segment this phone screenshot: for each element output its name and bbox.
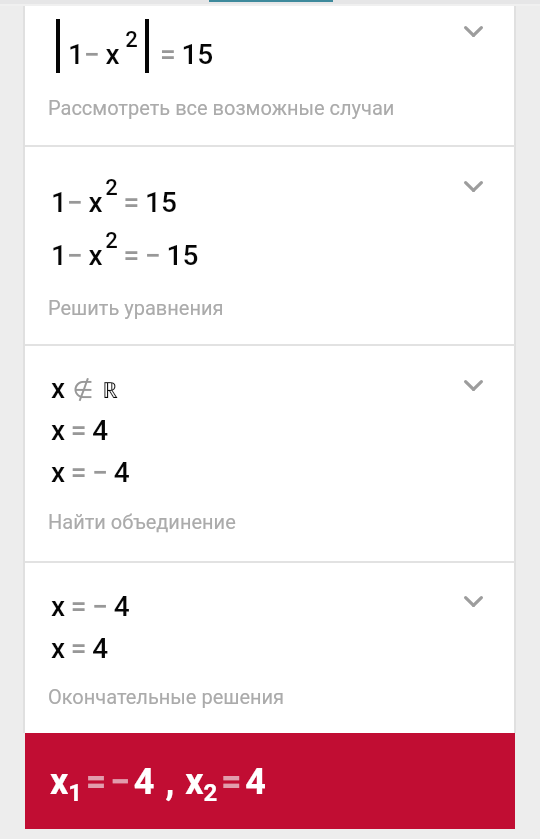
button[interactable]: Expand step xyxy=(451,164,495,208)
button[interactable]: Expand step xyxy=(451,579,495,623)
staticText: x = 4 xyxy=(51,632,109,665)
staticText: 1− x 2 = − 15 xyxy=(51,228,199,272)
button[interactable]: x1 = − 4 , x2 = 4 xyxy=(25,733,515,829)
staticText: 1− x 2 xyxy=(68,27,138,71)
staticText: x = − 4 xyxy=(51,590,130,623)
staticText: 1− x 2 = 15 xyxy=(51,175,177,219)
staticText: Найти объединение xyxy=(48,510,236,533)
staticText: Решить уравнения xyxy=(48,296,224,319)
staticText: x = 4 xyxy=(51,414,109,447)
button[interactable]: 1− x 2 xyxy=(25,0,515,145)
staticText: Окончательные решения xyxy=(48,685,285,708)
button[interactable]: x = − 4 xyxy=(25,562,515,733)
button[interactable]: Expand step xyxy=(451,9,495,53)
button[interactable]: 1− x 2 = 15 xyxy=(25,146,515,344)
button[interactable]: Expand step xyxy=(451,363,495,407)
staticText: x ∉ ℝ xyxy=(51,372,119,405)
button[interactable]: x ∉ ℝ xyxy=(25,345,515,561)
staticText: Рассмотреть все возможные случаи xyxy=(48,96,395,119)
staticText: x = − 4 xyxy=(51,456,130,489)
staticText: x1 = − 4 , x2 = 4 xyxy=(50,761,266,807)
staticText: = 15 xyxy=(160,38,214,71)
